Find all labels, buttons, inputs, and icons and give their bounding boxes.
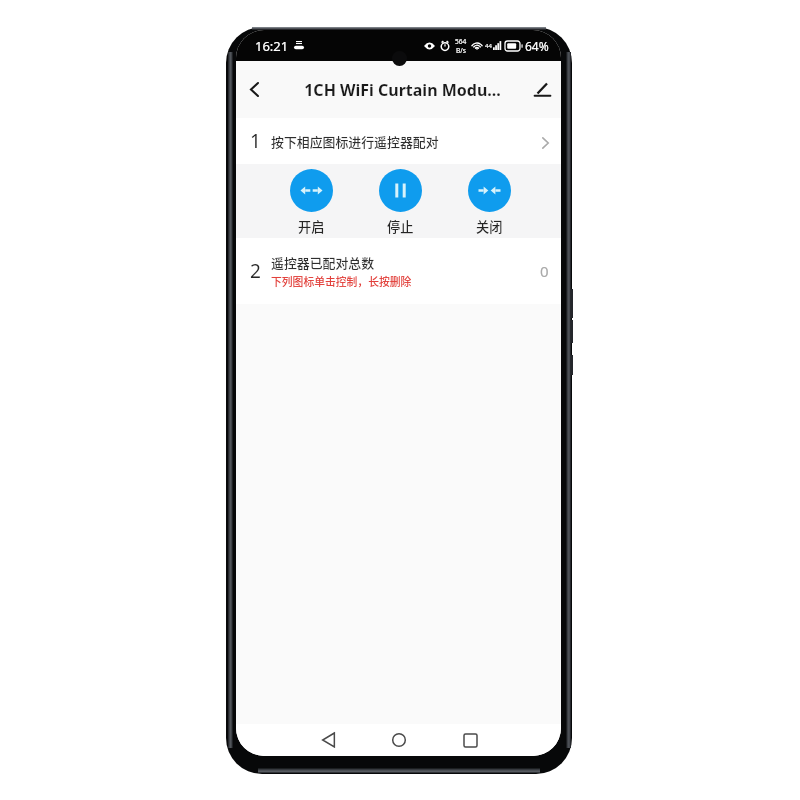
staticText: 遥控器已配对总数	[271, 253, 375, 272]
staticText: B/s	[456, 46, 466, 55]
staticText: 下列图标单击控制，长按删除	[271, 273, 412, 289]
button[interactable]: 2	[236, 238, 561, 304]
button[interactable]: 开启	[290, 164, 333, 236]
button[interactable]: 1	[236, 118, 561, 164]
staticText: 1CH WiFi Curtain Modu...	[304, 79, 501, 101]
button[interactable]: Recents	[443, 724, 497, 756]
staticText: 开启	[298, 217, 325, 236]
staticText: 停止	[387, 217, 414, 236]
staticText: 1	[250, 128, 261, 154]
staticText: 0	[540, 261, 549, 281]
staticText: 564	[455, 37, 467, 46]
button[interactable]: Edit	[524, 61, 561, 118]
staticText: 16:21	[255, 37, 289, 55]
staticText: 2	[250, 258, 261, 284]
staticText: 44	[485, 42, 492, 50]
staticText: 64%	[525, 38, 549, 54]
button[interactable]: 关闭	[468, 164, 511, 236]
button[interactable]: Back	[301, 724, 355, 756]
button[interactable]: Back	[236, 61, 272, 118]
staticText: 按下相应图标进行遥控器配对	[271, 132, 439, 151]
button[interactable]: Home	[372, 724, 426, 756]
button[interactable]: 停止	[379, 164, 422, 236]
staticText: 关闭	[476, 217, 503, 236]
